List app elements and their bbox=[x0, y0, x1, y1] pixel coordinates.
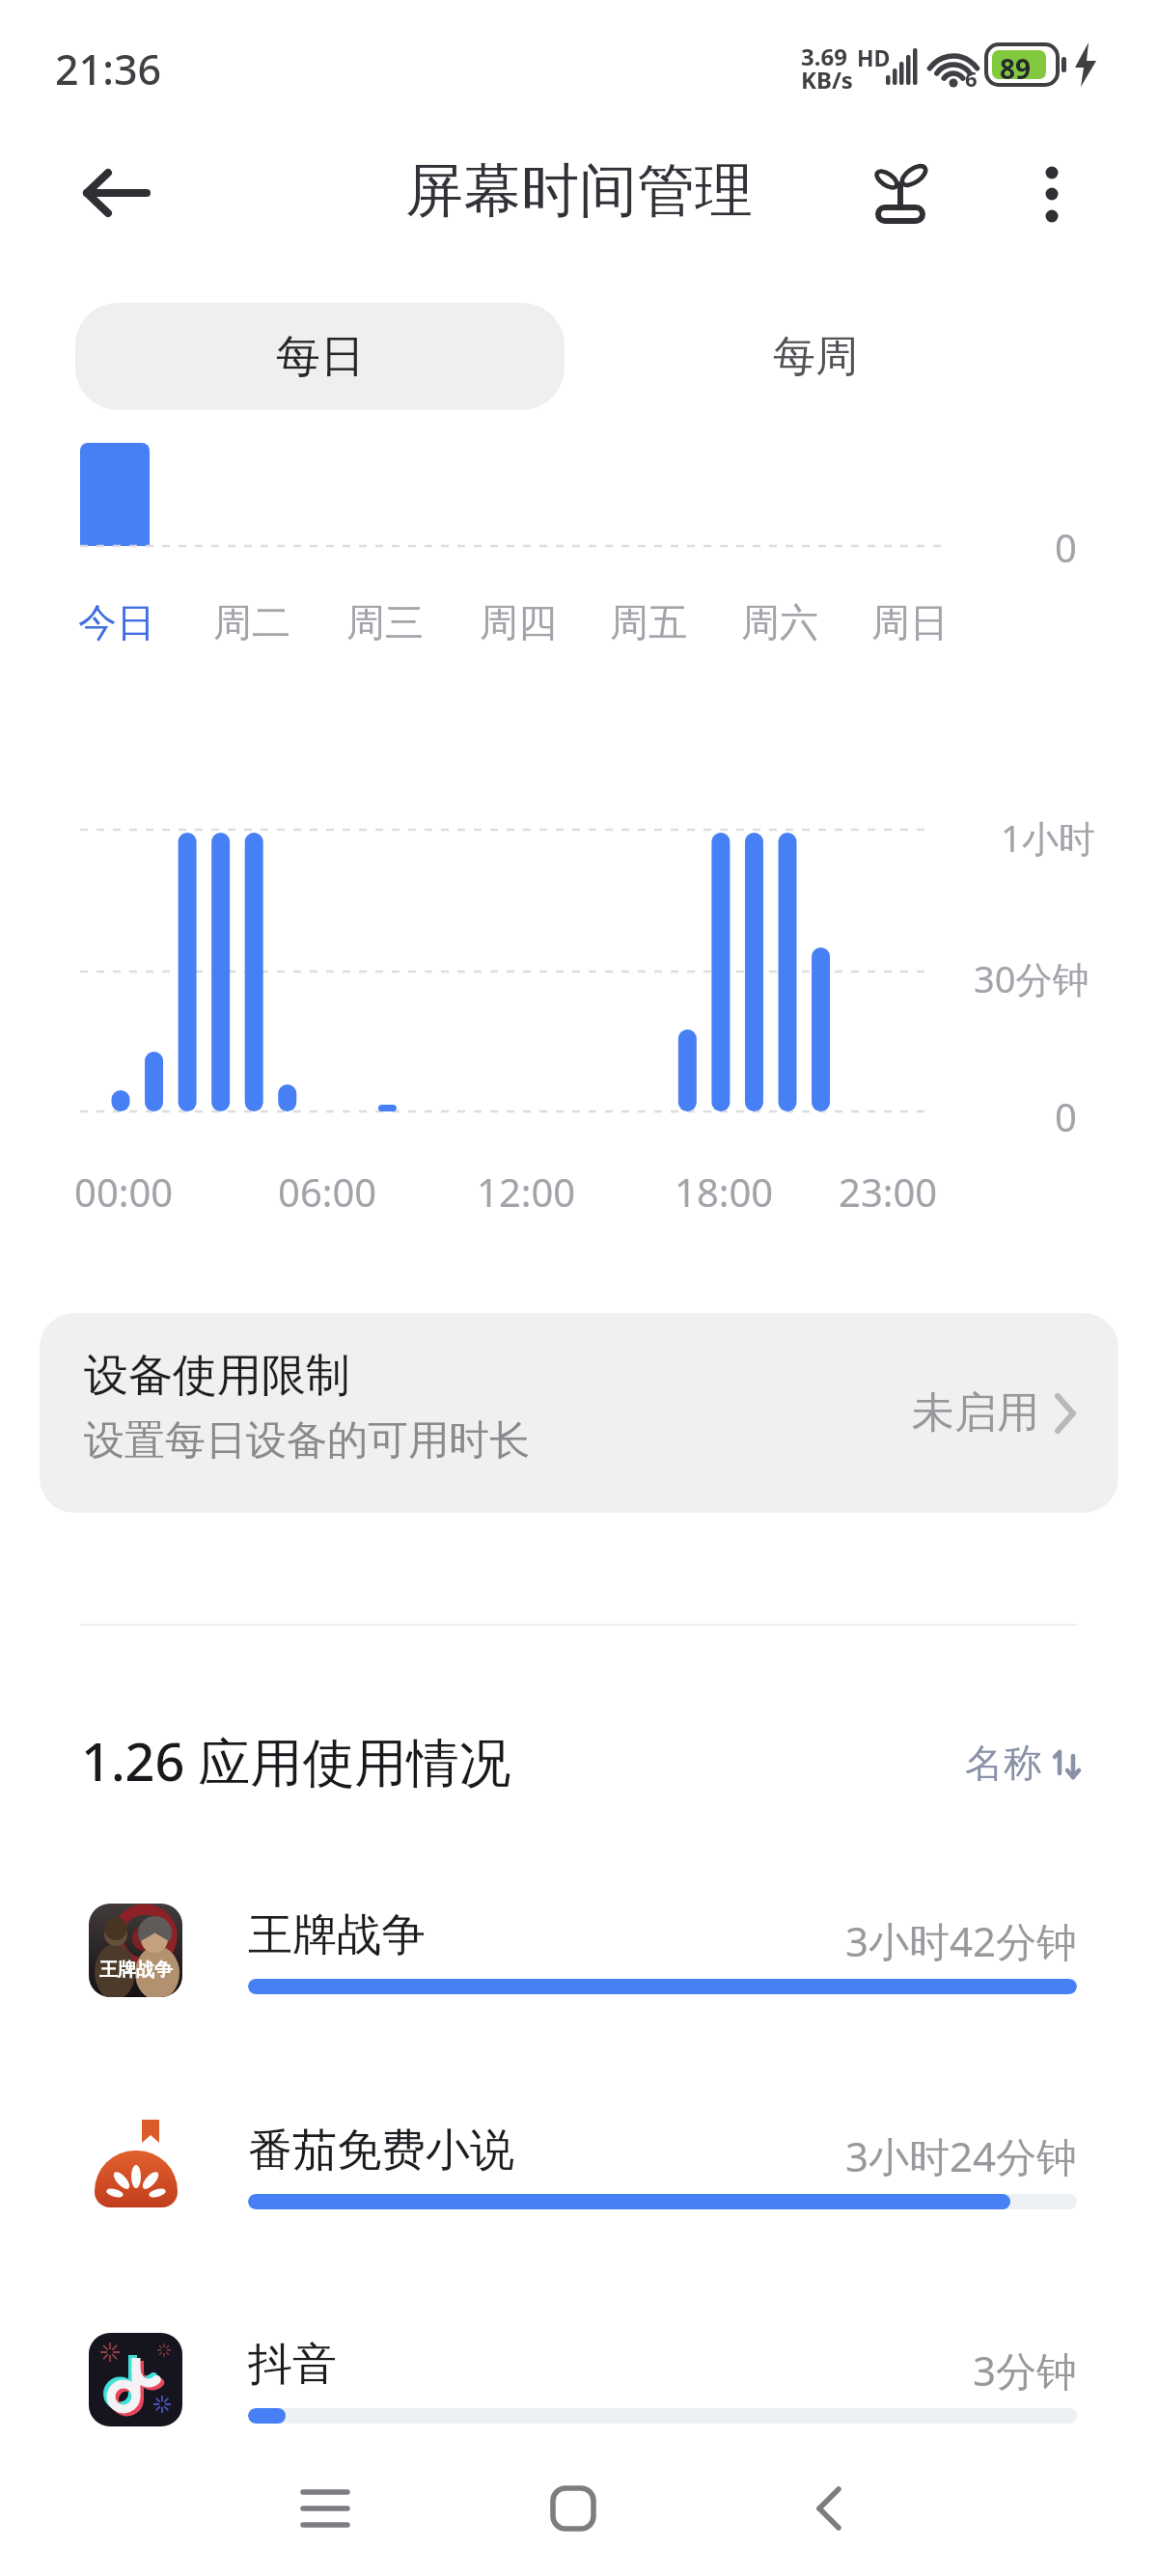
staticText: 3.69 bbox=[801, 41, 847, 72]
staticText: 抖音 bbox=[248, 2337, 337, 2393]
staticText: 06:00 bbox=[278, 1165, 377, 1218]
button[interactable] bbox=[0, 2323, 1158, 2439]
staticText: 6 bbox=[965, 64, 978, 93]
button[interactable]: 设备使用限制 bbox=[40, 1313, 1118, 1513]
staticText: 12:00 bbox=[477, 1165, 576, 1218]
staticText: 屏幕时间管理 bbox=[405, 154, 753, 228]
staticText: 3分钟 bbox=[973, 2343, 1078, 2398]
button[interactable] bbox=[750, 2451, 904, 2566]
button[interactable] bbox=[0, 2109, 1158, 2225]
button[interactable] bbox=[248, 2451, 402, 2566]
staticText: 名称 bbox=[965, 1739, 1042, 1787]
button[interactable] bbox=[58, 150, 164, 241]
staticText: 周四 bbox=[480, 598, 557, 646]
staticText: 3小时42分钟 bbox=[845, 1913, 1078, 1968]
staticText: 周日 bbox=[871, 598, 949, 646]
staticText: 周二 bbox=[213, 598, 290, 646]
staticText: 3小时24分钟 bbox=[845, 2128, 1078, 2183]
button[interactable]: 每周 bbox=[593, 303, 1037, 410]
staticText: 周三 bbox=[346, 598, 424, 646]
staticText: 89 bbox=[1000, 50, 1032, 87]
staticText: 23:00 bbox=[839, 1165, 938, 1218]
staticText: 设置每日设备的可用时长 bbox=[84, 1415, 530, 1466]
button[interactable] bbox=[849, 145, 951, 246]
staticText: HD bbox=[857, 42, 891, 72]
staticText: 每周 bbox=[773, 330, 858, 383]
staticText: 王牌战争 bbox=[99, 1959, 173, 1982]
staticText: 番茄免费小说 bbox=[248, 2123, 514, 2179]
staticText: 0 bbox=[1055, 1090, 1077, 1142]
staticText: 每日 bbox=[276, 329, 365, 385]
staticText: 0 bbox=[1055, 521, 1077, 573]
staticText: 00:00 bbox=[74, 1165, 174, 1218]
button[interactable] bbox=[0, 1894, 1158, 2010]
staticText: 周六 bbox=[741, 598, 818, 646]
staticText: 今日 bbox=[78, 598, 155, 646]
staticText: 未启用 bbox=[912, 1386, 1039, 1439]
staticText: 1小时 bbox=[1001, 812, 1095, 863]
staticText: KB/s bbox=[801, 64, 853, 96]
button[interactable] bbox=[496, 2451, 650, 2566]
staticText: 设备使用限制 bbox=[84, 1348, 350, 1404]
staticText: 1.26 应用使用情况 bbox=[81, 1725, 511, 1796]
staticText: 18:00 bbox=[675, 1165, 774, 1218]
staticText: 30分钟 bbox=[974, 953, 1089, 1003]
staticText: 21:36 bbox=[55, 41, 162, 97]
button[interactable]: 每日 bbox=[75, 303, 565, 410]
button[interactable]: 名称 bbox=[926, 1727, 1090, 1795]
staticText: 王牌战争 bbox=[248, 1907, 426, 1963]
staticText: 周五 bbox=[610, 598, 687, 646]
button[interactable] bbox=[1018, 145, 1086, 246]
